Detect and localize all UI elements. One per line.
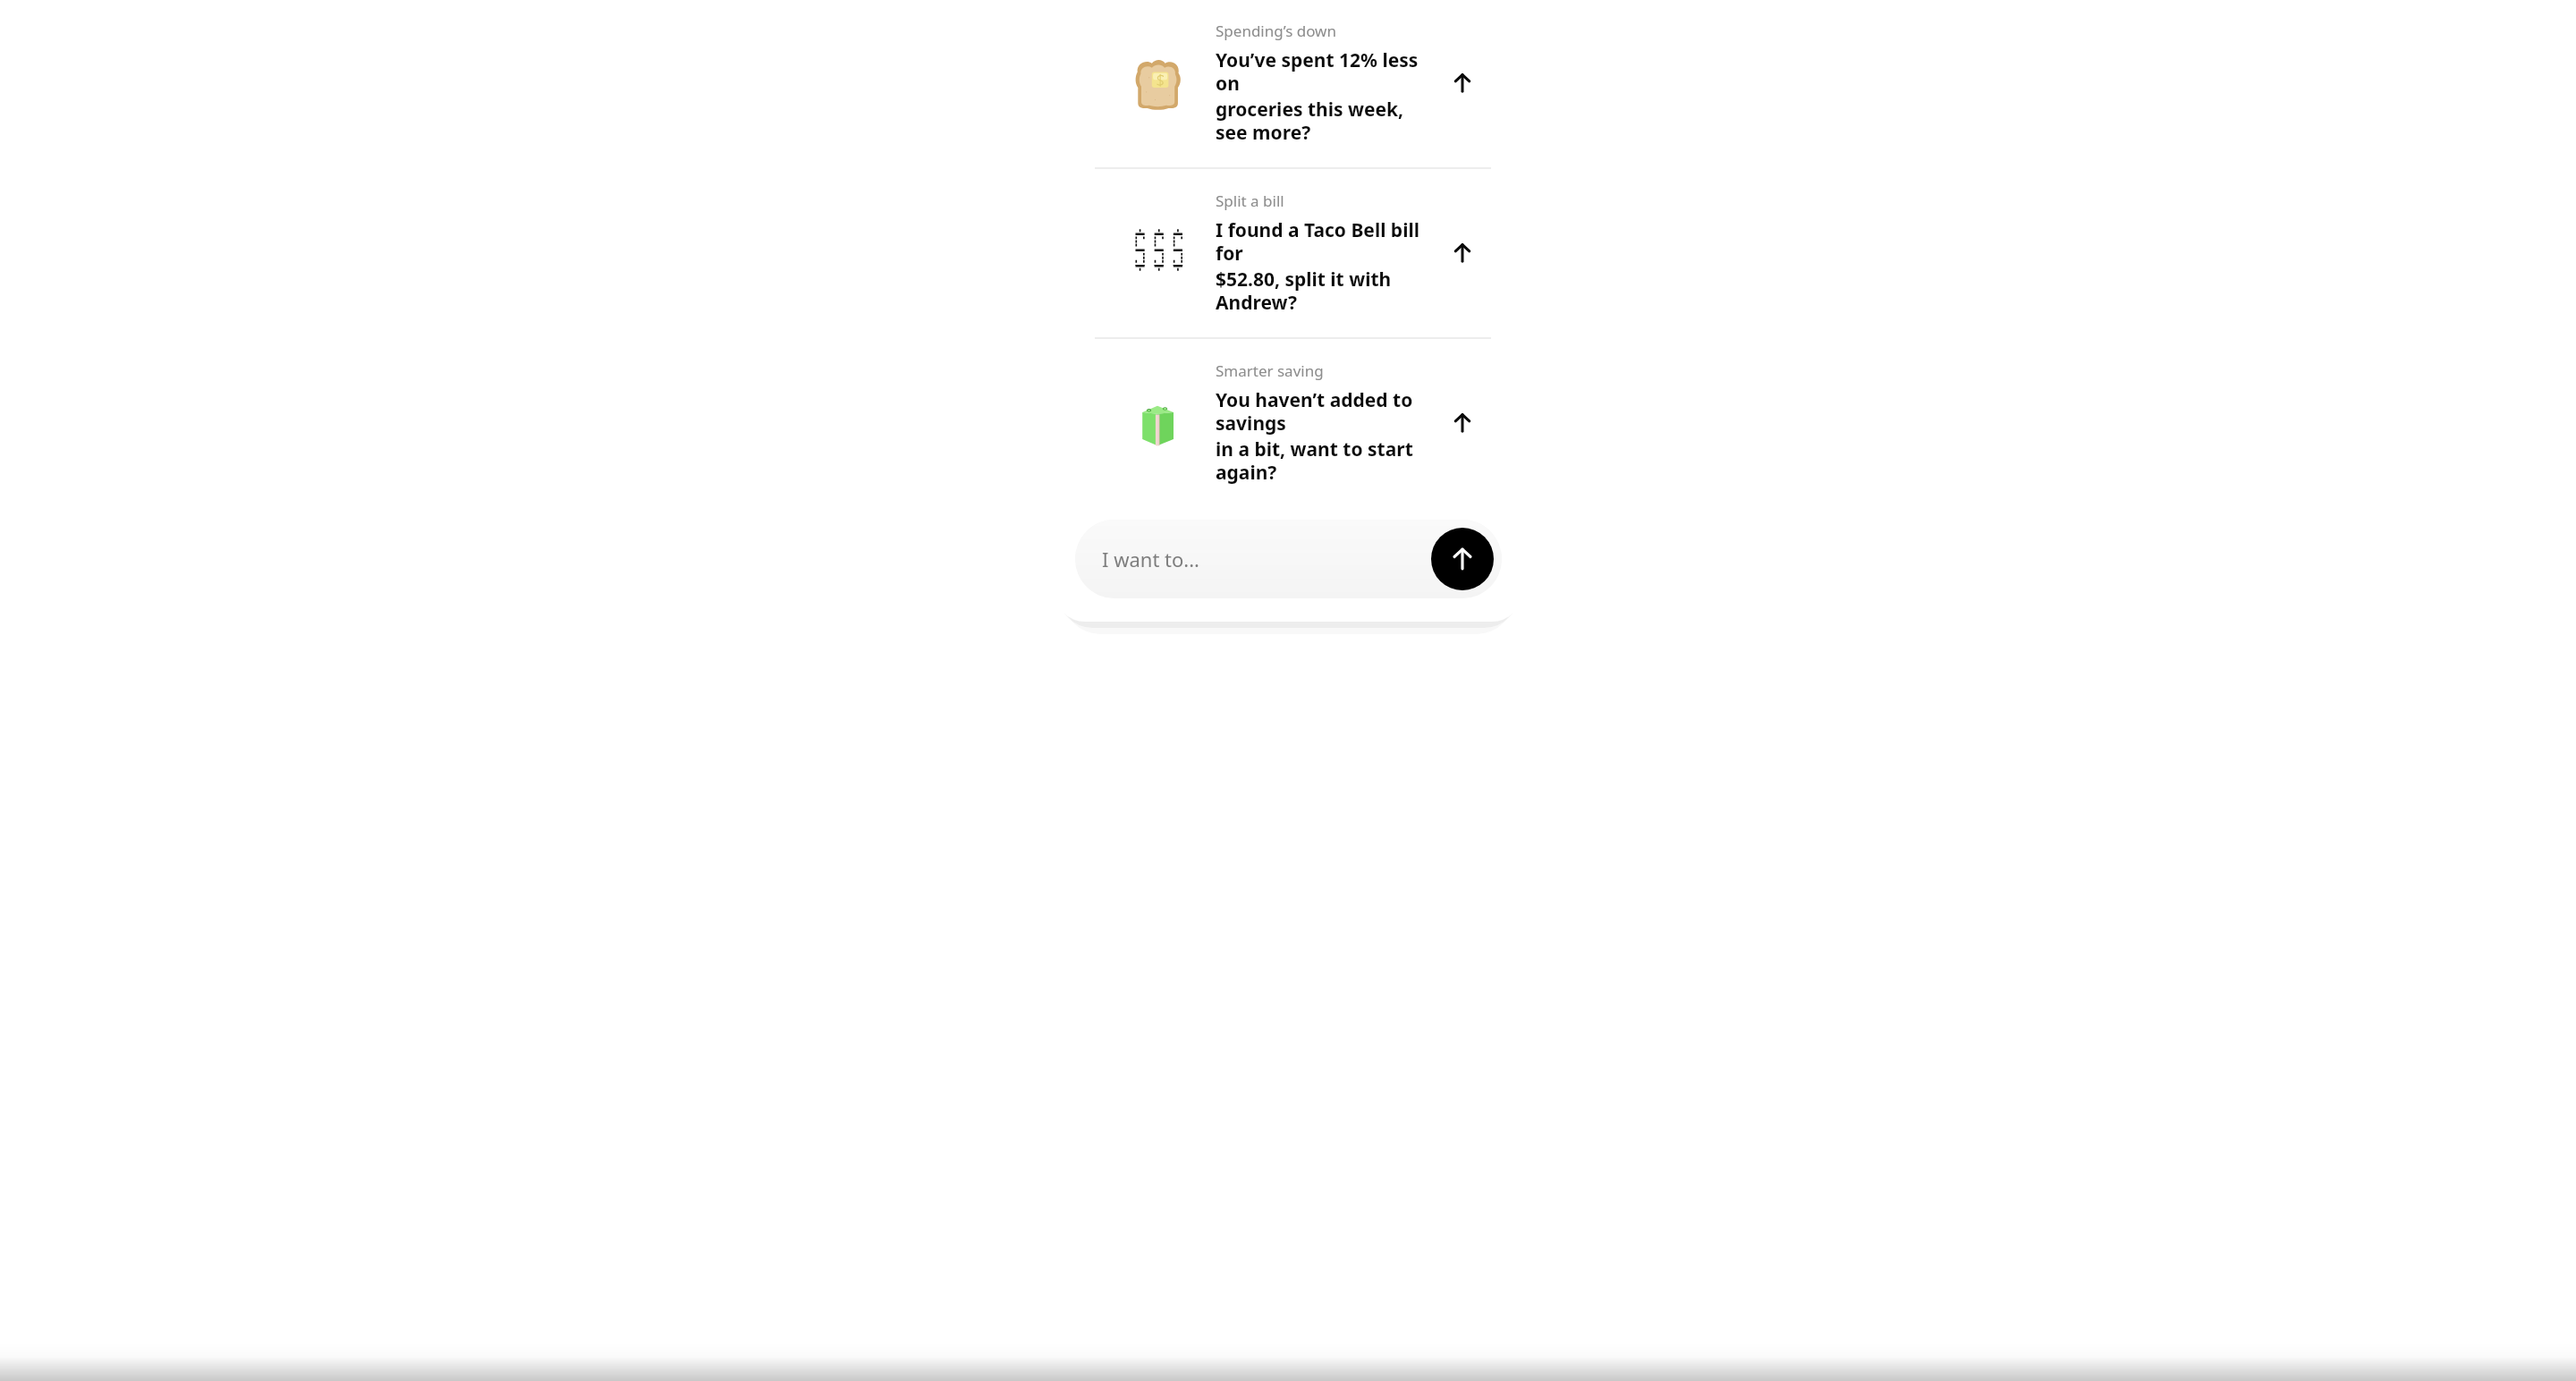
button[interactable]: Smarter saving <box>1055 339 1522 507</box>
button[interactable]: Open suggestion <box>1438 399 1487 447</box>
staticText: Smarter saving <box>1216 360 1324 381</box>
staticText: Spending’s down <box>1216 21 1336 41</box>
button[interactable]: Open suggestion <box>1438 229 1487 277</box>
staticText: You haven’t added to savings <box>1216 387 1420 436</box>
button[interactable]: Send <box>1431 528 1494 590</box>
staticText: I found a Taco Bell bill for <box>1216 217 1420 267</box>
staticText: Split a bill <box>1216 191 1284 211</box>
button[interactable]: Split a bill <box>1055 169 1522 337</box>
button[interactable]: Open suggestion <box>1438 59 1487 107</box>
staticText: in a bit, want to start again? <box>1216 436 1420 486</box>
button[interactable]: Spending’s down <box>1055 0 1522 167</box>
staticText: You’ve spent 12% less on <box>1216 47 1420 97</box>
button[interactable]: I want to... <box>1075 520 1502 598</box>
staticText: I want to... <box>1102 546 1200 572</box>
staticText: groceries this week, see more? <box>1216 97 1420 146</box>
staticText: $52.80, split it with Andrew? <box>1216 267 1420 316</box>
